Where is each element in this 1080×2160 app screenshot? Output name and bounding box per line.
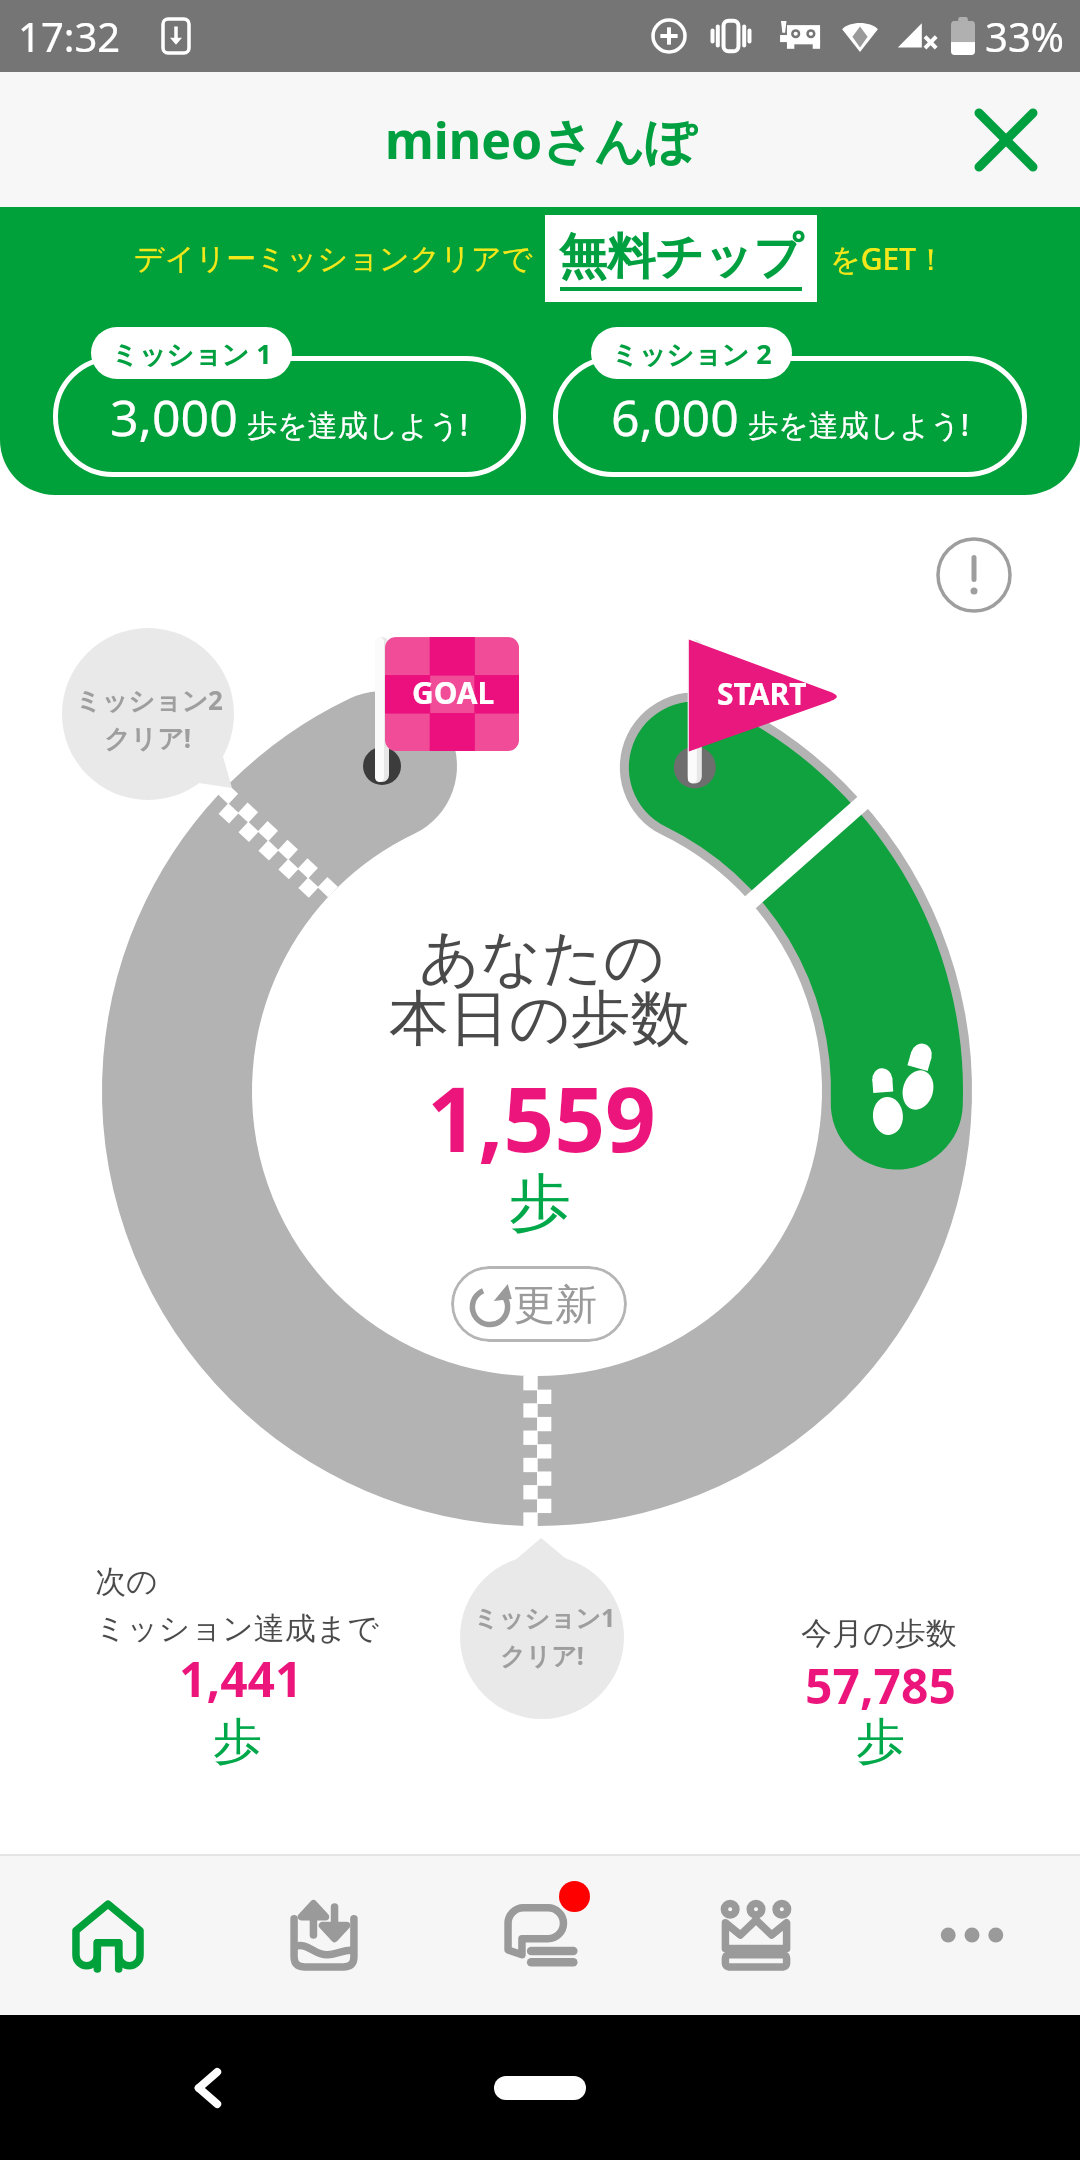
staticText: あなたの: [419, 920, 665, 996]
staticText: ミッション2: [75, 682, 223, 718]
staticText: ミッション 1: [111, 335, 272, 372]
staticText: をGET！: [830, 238, 947, 279]
button[interactable]: 6,000: [553, 327, 1027, 477]
staticText: 3,000: [110, 383, 238, 451]
staticText: 次の: [95, 1562, 158, 1601]
button[interactable]: More: [864, 1854, 1080, 2015]
staticText: 1,441: [179, 1646, 303, 1711]
staticText: 今月の歩数: [801, 1614, 957, 1653]
button[interactable]: Close: [954, 88, 1058, 192]
button[interactable]: 更新: [451, 1266, 627, 1342]
button[interactable]: Info: [936, 537, 1012, 613]
staticText: 歩を達成しよう!: [247, 404, 469, 445]
button[interactable]: Chat: [432, 1854, 648, 2015]
staticText: クリア!: [104, 720, 192, 756]
staticText: 更新: [513, 1279, 597, 1332]
staticText: 1,559: [427, 1057, 656, 1178]
staticText: 本日の歩数: [389, 981, 691, 1057]
staticText: クリア!: [500, 1638, 584, 1672]
staticText: 歩: [856, 1711, 905, 1773]
staticText: 歩を達成しよう!: [748, 404, 970, 445]
button[interactable]: Back: [170, 2050, 246, 2126]
staticText: GOAL: [412, 672, 495, 713]
button[interactable]: Data usage: [216, 1854, 432, 2015]
staticText: 無料チップ: [559, 227, 803, 287]
staticText: 6,000: [611, 383, 739, 451]
button[interactable]: Rewards: [648, 1854, 864, 2015]
staticText: 歩: [509, 1164, 571, 1242]
staticText: デイリーミッションクリアで: [134, 240, 533, 278]
staticText: mineoさんぽ: [385, 106, 696, 174]
staticText: ミッション達成まで: [95, 1609, 380, 1648]
staticText: 17:32: [18, 9, 121, 63]
button[interactable]: Home: [0, 1854, 216, 2015]
staticText: ミッション1: [473, 1600, 616, 1634]
staticText: 33%: [985, 9, 1064, 63]
staticText: 歩: [213, 1711, 262, 1773]
staticText: 57,785: [805, 1653, 956, 1718]
staticText: ミッション 2: [611, 335, 772, 372]
staticText: START: [717, 673, 807, 714]
button[interactable]: 3,000: [53, 327, 526, 477]
